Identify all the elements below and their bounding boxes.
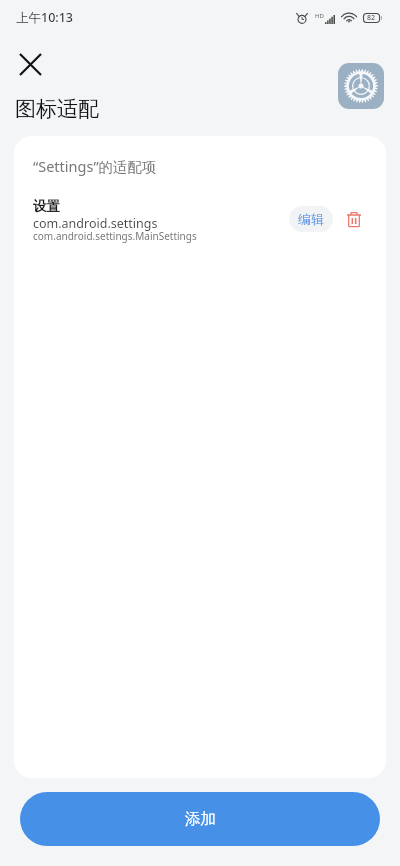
button[interactable]: 设置 [14,198,386,246]
staticText: 设置 [33,198,60,215]
staticText: com.android.settings.MainSettings [33,229,197,243]
staticText: 上午10:13 [16,9,74,26]
staticText: 编辑 [298,211,324,227]
staticText: 82 [367,13,376,23]
staticText: 图标适配 [15,96,99,122]
staticText: 添加 [185,809,216,829]
button[interactable]: Delete [341,206,367,232]
button[interactable]: 编辑 [289,206,333,232]
staticText: HD [315,12,324,20]
button[interactable]: 添加 [20,792,380,846]
staticText: “Settings”的适配项 [33,156,157,176]
button[interactable]: Close [14,48,46,80]
staticText: com.android.settings [33,215,158,232]
button[interactable]: Settings app icon [338,63,384,109]
